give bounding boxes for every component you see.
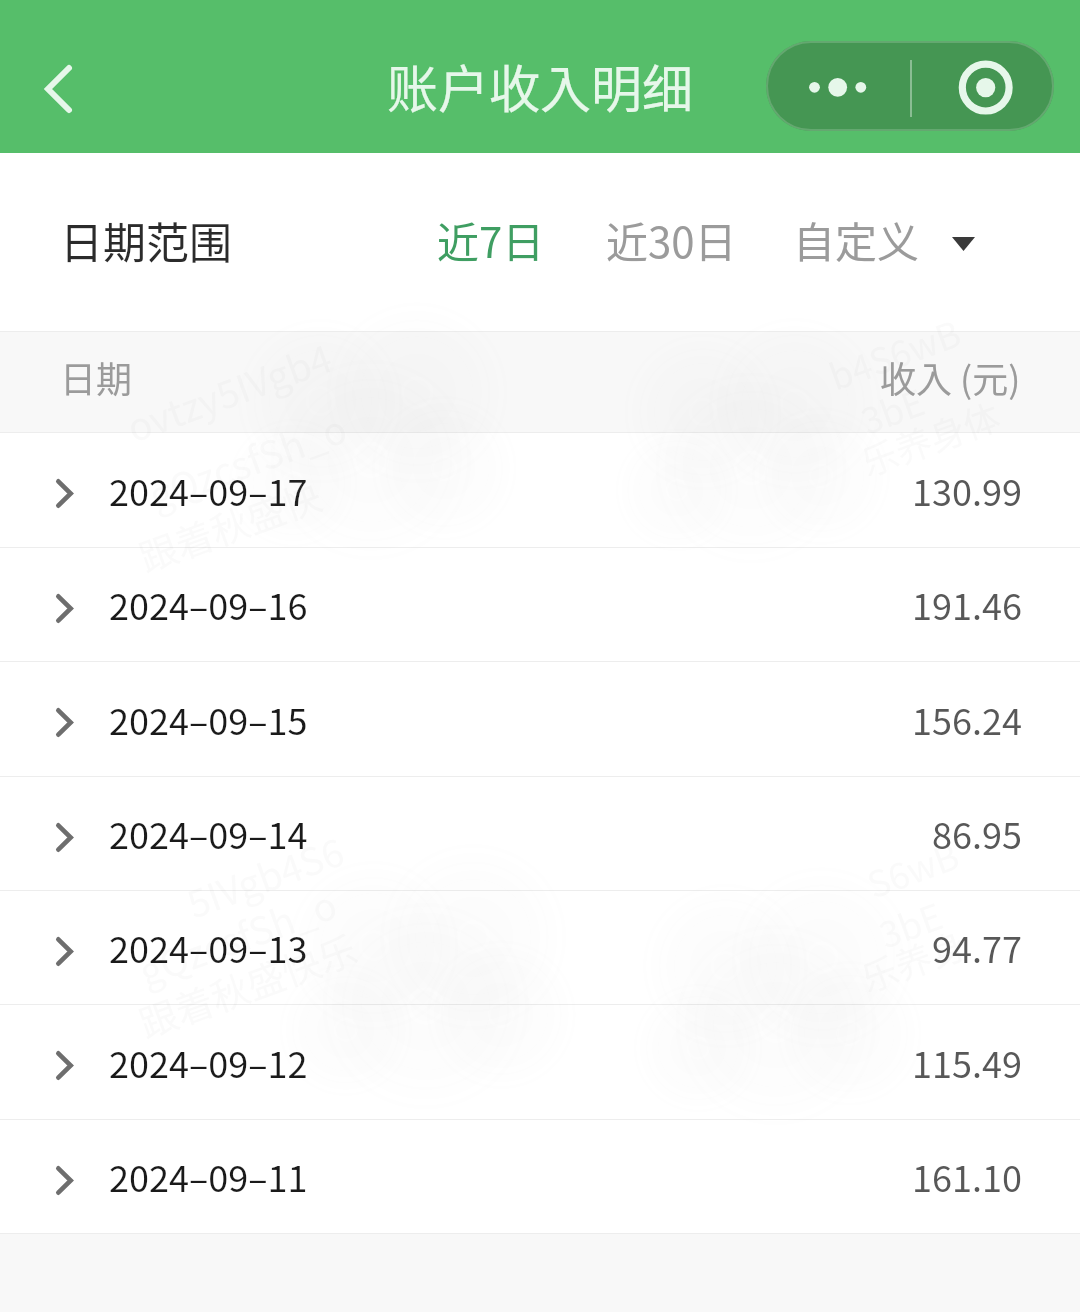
- button[interactable]: 2024–09–14: [0, 777, 1080, 891]
- staticText: 94.77: [932, 921, 1022, 973]
- staticText: ovtzy5IVgb4: [119, 328, 338, 453]
- staticText: gQzcsfSh_o: [131, 875, 344, 997]
- staticText: 2024–09–17: [109, 464, 308, 516]
- staticText: 86.95: [932, 807, 1022, 859]
- staticText: 3bE: [871, 888, 949, 958]
- button[interactable]: 近7日: [437, 197, 545, 282]
- staticText: b4S6wB: [821, 305, 968, 400]
- staticText: S6wB: [859, 827, 965, 908]
- staticText: 161.10: [912, 1150, 1022, 1202]
- button[interactable]: 2024–09–15: [0, 662, 1080, 777]
- staticText: 账户收入明细: [387, 49, 694, 123]
- button[interactable]: 近30日: [606, 197, 737, 282]
- staticText: 跟着秋盛快乐: [131, 919, 365, 1049]
- staticText: 自定义: [793, 209, 920, 270]
- staticText: 日期范围: [60, 209, 232, 271]
- button[interactable]: 2024–09–11: [0, 1120, 1080, 1234]
- staticText: 2024–09–13: [109, 921, 308, 973]
- staticText: 130.99: [912, 464, 1022, 516]
- staticText: 近30日: [606, 209, 737, 270]
- staticText: 156.24: [912, 693, 1022, 745]
- staticText: 乐养身: [853, 916, 973, 1002]
- button[interactable]: 2024–09–12: [0, 1005, 1080, 1120]
- staticText: 收入 (元): [880, 351, 1021, 403]
- staticText: 跟着秋盛快: [131, 466, 329, 583]
- staticText: 191.46: [912, 578, 1022, 630]
- button[interactable]: 2024–09–17: [0, 433, 1080, 548]
- staticText: 2024–09–11: [109, 1150, 308, 1202]
- staticText: gQzcsfSh_o: [141, 399, 354, 521]
- staticText: 2024–09–16: [109, 578, 308, 630]
- staticText: 2024–09–12: [109, 1036, 308, 1088]
- staticText: 日期: [60, 351, 133, 403]
- button[interactable]: 自定义: [793, 197, 975, 282]
- button[interactable]: More options: [766, 41, 910, 131]
- staticText: 3bE: [853, 374, 931, 444]
- button[interactable]: 2024–09–16: [0, 548, 1080, 662]
- staticText: 2024–09–15: [109, 693, 308, 745]
- button[interactable]: 2024–09–13: [0, 891, 1080, 1005]
- staticText: 115.49: [912, 1036, 1022, 1088]
- staticText: 5IVgb4S6: [179, 822, 351, 929]
- staticText: 近7日: [437, 209, 545, 270]
- button[interactable]: Close mini program: [910, 41, 1054, 131]
- staticText: 2024–09–14: [109, 807, 308, 859]
- button[interactable]: Back: [12, 53, 102, 123]
- staticText: 乐养身体: [853, 388, 1007, 486]
